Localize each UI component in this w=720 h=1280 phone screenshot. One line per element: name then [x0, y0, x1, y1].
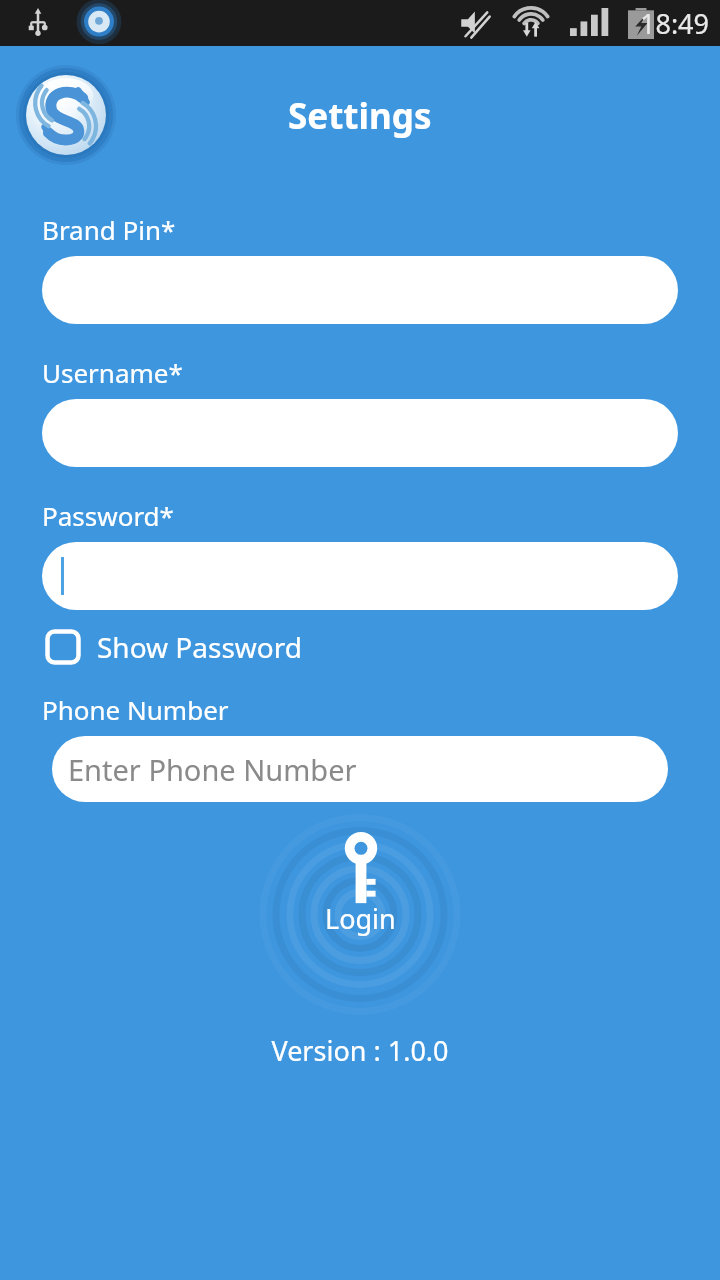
- button[interactable]: Username: [42, 399, 678, 467]
- staticText: Settings: [288, 92, 432, 140]
- button[interactable]: Phone Number: [52, 736, 668, 802]
- staticText: Enter Phone Number: [68, 750, 357, 789]
- staticText: Password*: [42, 498, 174, 533]
- staticText: 18:49: [640, 5, 710, 42]
- staticText: Brand Pin*: [42, 212, 176, 247]
- staticText: Username*: [42, 355, 183, 390]
- other: Login key: [334, 844, 388, 898]
- staticText: Version : 1.0.0: [0, 1032, 720, 1069]
- staticText: Phone Number: [42, 692, 229, 727]
- button[interactable]: Login key: [325, 844, 396, 937]
- button[interactable]: Brand Pin: [42, 256, 678, 324]
- staticText: Show Password: [97, 628, 302, 666]
- staticText: Login: [325, 900, 396, 937]
- button[interactable]: Show Password: [45, 628, 302, 666]
- button[interactable]: App logo: [16, 65, 116, 165]
- button[interactable]: Password: [42, 542, 678, 610]
